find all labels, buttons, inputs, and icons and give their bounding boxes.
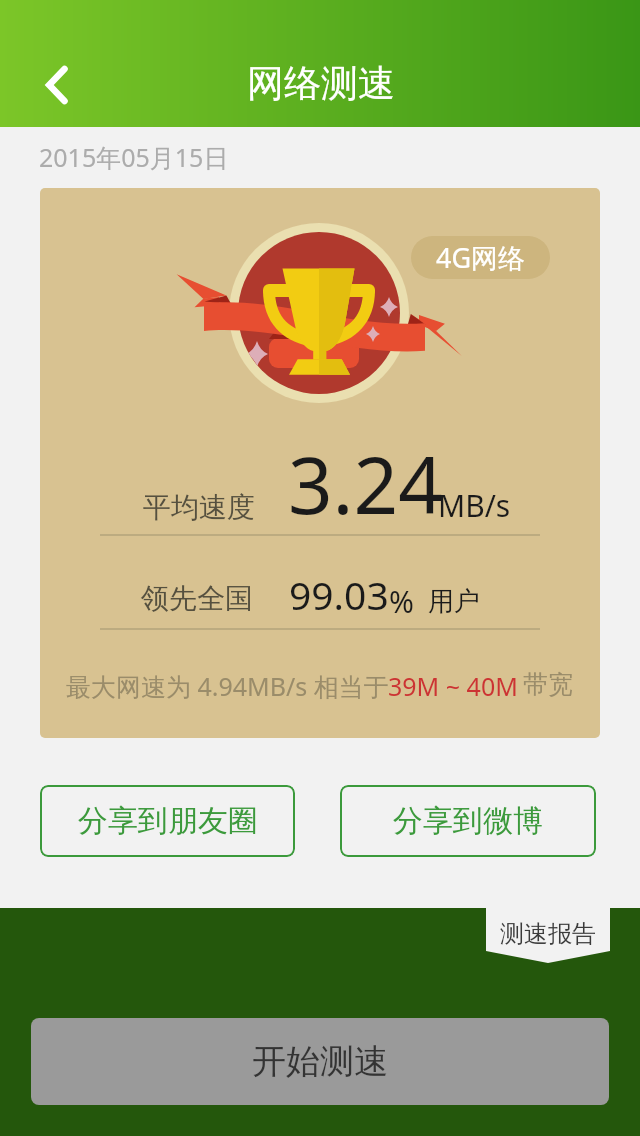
button[interactable]: 测速报告 xyxy=(486,908,610,963)
button[interactable]: 分享到微博 xyxy=(340,785,596,857)
staticText: 平均速度 xyxy=(143,490,255,525)
staticText: 99.03 xyxy=(289,568,389,621)
staticText: 分享到微博 xyxy=(393,802,543,840)
staticText: 领先全国 xyxy=(141,581,253,616)
staticText: 最大网速为 4.94MB/s 相当于 xyxy=(66,669,389,703)
staticText: 测速报告 xyxy=(500,919,596,949)
staticText: 4G网络 xyxy=(436,239,526,276)
staticText: 分享到朋友圈 xyxy=(78,802,258,840)
staticText: 39M ~ 40M xyxy=(388,669,518,703)
button[interactable]: 开始测速 xyxy=(31,1018,609,1105)
staticText: 3.24 xyxy=(288,431,443,537)
staticText: % xyxy=(389,581,414,622)
staticText: 用户 xyxy=(428,585,480,618)
staticText: 开始测速 xyxy=(252,1040,388,1083)
staticText: 网络测速 xyxy=(247,60,395,107)
staticText: 带宽 xyxy=(523,669,573,700)
staticText: MB/s xyxy=(438,485,511,526)
staticText: 2015年05月15日 xyxy=(39,140,229,174)
button[interactable]: 分享到朋友圈 xyxy=(40,785,295,857)
button[interactable]: Back xyxy=(26,49,88,121)
